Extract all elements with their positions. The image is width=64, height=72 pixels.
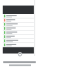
button[interactable] [3, 18, 34, 22]
button[interactable] [3, 26, 34, 30]
button[interactable] [3, 30, 34, 34]
button[interactable] [3, 34, 34, 38]
button[interactable] [3, 22, 34, 26]
button[interactable]: Bottom bar [3, 47, 34, 53]
button[interactable] [3, 14, 34, 18]
button[interactable] [3, 38, 34, 42]
button[interactable] [3, 42, 34, 46]
button[interactable]: App bar [3, 5, 34, 14]
